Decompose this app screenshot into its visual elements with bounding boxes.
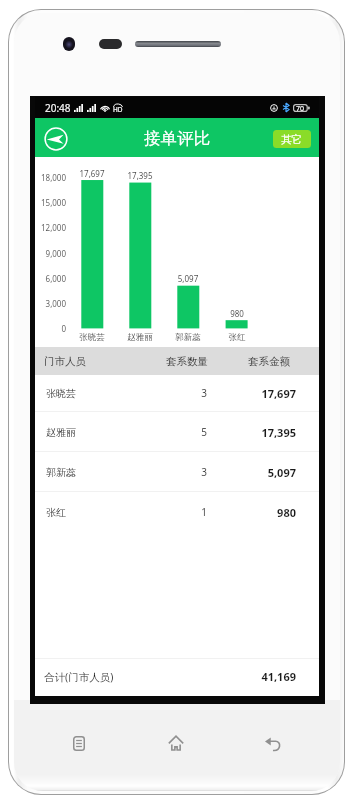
button[interactable]: Home <box>160 727 192 759</box>
button[interactable]: Back <box>39 122 72 155</box>
staticText: 套系金额 <box>239 355 299 368</box>
staticText: 3,000 <box>35 298 66 309</box>
staticText: 20:48 <box>45 101 71 115</box>
staticText: 张红 <box>46 506 66 519</box>
staticText: 5,097 <box>226 465 296 480</box>
button[interactable]: 郭新蕊 <box>35 452 319 492</box>
staticText: 9,000 <box>35 248 66 259</box>
staticText: 17,697 <box>226 386 296 401</box>
staticText: 980 <box>226 505 296 520</box>
staticText: 70 <box>296 104 305 112</box>
staticText: 合计(门市人员) <box>44 670 114 684</box>
staticText: 3 <box>184 465 224 479</box>
staticText: 门市人员 <box>44 355 86 368</box>
staticText: 赵雅丽 <box>110 332 170 343</box>
staticText: 15,000 <box>35 197 66 208</box>
staticText: 12,000 <box>35 222 66 233</box>
staticText: 41,169 <box>226 669 296 684</box>
button[interactable]: 赵雅丽 <box>35 412 319 452</box>
staticText: 17,697 <box>62 168 122 179</box>
staticText: 6,000 <box>35 273 66 284</box>
staticText: 郭新蕊 <box>158 332 218 343</box>
button[interactable]: Back <box>257 728 289 760</box>
staticText: 18,000 <box>35 172 66 183</box>
staticText: 郭新蕊 <box>46 466 76 479</box>
staticText: 张红 <box>207 332 267 343</box>
staticText: 张晓芸 <box>62 332 122 343</box>
staticText: 17,395 <box>110 170 170 181</box>
staticText: 套系数量 <box>157 355 217 368</box>
button[interactable]: 张晓芸 <box>35 374 319 412</box>
staticText: 1 <box>184 505 224 519</box>
staticText: 980 <box>207 308 267 319</box>
staticText: 接单评比 <box>144 128 210 149</box>
staticText: 张晓芸 <box>46 387 76 400</box>
staticText: 其它 <box>281 133 303 146</box>
button[interactable]: Recent apps <box>63 727 95 759</box>
staticText: 0 <box>35 323 66 334</box>
button[interactable]: 张红 <box>35 492 319 532</box>
staticText: 5,097 <box>158 273 218 284</box>
staticText: 17,395 <box>226 425 296 440</box>
staticText: 5 <box>184 425 224 439</box>
button[interactable]: 其它 <box>273 130 311 148</box>
staticText: 3 <box>184 386 224 400</box>
staticText: 赵雅丽 <box>46 426 76 439</box>
staticText: HD <box>113 105 123 114</box>
